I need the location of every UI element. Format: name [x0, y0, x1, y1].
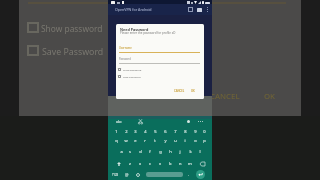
button[interactable]: 0: [199, 126, 209, 137]
button[interactable]: ?123: [109, 169, 121, 180]
staticText: r: [144, 138, 146, 143]
staticText: Show password: [123, 68, 142, 71]
staticText: 0: [203, 129, 206, 134]
button[interactable]: v: [155, 158, 165, 169]
button[interactable]: 6: [160, 126, 170, 137]
button[interactable]: More options: [204, 5, 210, 14]
button[interactable]: Import profile: [195, 5, 204, 14]
button[interactable]: Emoji: [133, 169, 142, 180]
button[interactable]: s: [125, 146, 135, 157]
button[interactable]: o: [190, 135, 200, 146]
staticText: Save Password: [123, 75, 141, 78]
staticText: 2: [125, 129, 128, 134]
button[interactable]: abc: [116, 119, 122, 124]
staticText: z: [129, 161, 131, 166]
staticText: CANCEL: [210, 91, 240, 102]
staticText: n: [179, 161, 182, 166]
staticText: k: [189, 149, 192, 154]
staticText: 5: [154, 129, 157, 134]
staticText: @: [125, 172, 129, 177]
staticText: abc: [116, 119, 122, 124]
staticText: j: [179, 149, 181, 154]
button[interactable]: h: [165, 146, 175, 157]
staticText: q: [115, 138, 118, 143]
staticText: i: [184, 138, 186, 143]
button[interactable]: Space: [146, 172, 183, 177]
button[interactable]: Add profile: [186, 5, 195, 14]
staticText: Need Password: [120, 27, 149, 32]
staticText: x: [139, 161, 142, 166]
staticText: Please enter the password for profile xD: [120, 31, 176, 35]
staticText: e: [134, 138, 137, 143]
button[interactable]: OK: [189, 87, 197, 95]
staticText: o: [194, 138, 197, 143]
button[interactable]: 3: [130, 126, 140, 137]
button[interactable]: 1: [111, 126, 121, 137]
staticText: u: [174, 138, 177, 143]
button[interactable]: More: [198, 119, 203, 124]
staticText: d: [139, 149, 142, 154]
button[interactable]: 9: [190, 126, 200, 137]
button[interactable]: e: [130, 135, 140, 146]
button[interactable]: d: [135, 146, 145, 157]
button[interactable]: l: [195, 146, 205, 157]
staticText: Password: [119, 57, 131, 61]
button[interactable]: u: [170, 135, 180, 146]
staticText: OK: [191, 89, 195, 93]
button[interactable]: @: [122, 169, 131, 180]
button[interactable]: r: [140, 135, 150, 146]
button[interactable]: b: [165, 158, 175, 169]
staticText: a: [120, 149, 123, 154]
button[interactable]: .: [186, 169, 192, 180]
staticText: 6: [164, 129, 167, 134]
staticText: t: [154, 138, 156, 143]
staticText: OpenVPN for Android: [115, 7, 152, 12]
button[interactable]: Enter: [196, 170, 205, 179]
button[interactable]: z: [125, 158, 135, 169]
staticText: 3: [134, 129, 137, 134]
button[interactable]: 4: [140, 126, 150, 137]
button[interactable]: Clipboard: [138, 119, 143, 124]
button[interactable]: 5: [150, 126, 160, 137]
staticText: Save Password: [42, 46, 104, 58]
button[interactable]: y: [160, 135, 170, 146]
button[interactable]: a: [116, 146, 126, 157]
staticText: c: [149, 161, 151, 166]
button[interactable]: p: [199, 135, 209, 146]
button[interactable]: Save Password: [117, 74, 142, 79]
button[interactable]: 7: [170, 126, 180, 137]
staticText: h: [169, 149, 172, 154]
button[interactable]: f: [145, 146, 155, 157]
button[interactable]: q: [111, 135, 121, 146]
button[interactable]: Backspace: [195, 158, 210, 169]
button[interactable]: i: [180, 135, 190, 146]
button[interactable]: Settings: [186, 119, 191, 124]
staticText: s: [129, 149, 131, 154]
staticText: Username: [119, 46, 132, 50]
staticText: 9: [194, 129, 197, 134]
staticText: 1: [115, 129, 118, 134]
button[interactable]: Show password: [117, 67, 143, 72]
staticText: Show password: [41, 23, 103, 34]
button[interactable]: g: [155, 146, 165, 157]
staticText: f: [149, 149, 151, 154]
button[interactable]: m: [185, 158, 195, 169]
button[interactable]: 2: [121, 126, 131, 137]
button[interactable]: k: [185, 146, 195, 157]
staticText: g: [159, 149, 162, 154]
button[interactable]: t: [150, 135, 160, 146]
button[interactable]: j: [175, 146, 185, 157]
staticText: v: [159, 161, 162, 166]
staticText: w: [124, 138, 128, 143]
staticText: 4: [144, 129, 147, 134]
staticText: l: [199, 149, 201, 154]
staticText: OK: [264, 91, 276, 102]
button[interactable]: n: [175, 158, 185, 169]
button[interactable]: Shift: [111, 158, 126, 169]
button[interactable]: w: [121, 135, 131, 146]
button[interactable]: c: [145, 158, 155, 169]
staticText: .: [188, 172, 190, 177]
button[interactable]: 8: [180, 126, 190, 137]
button[interactable]: CANCEL: [172, 87, 187, 95]
button[interactable]: x: [135, 158, 145, 169]
